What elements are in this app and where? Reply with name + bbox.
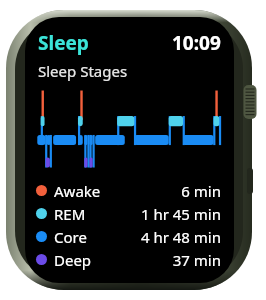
staticText: REM [54,204,86,224]
other: Digital Crown [0,0,266,300]
staticText: 1 hr 45 min [140,204,221,224]
button[interactable]: Deep [25,248,234,271]
staticText: 6 min [181,181,221,201]
button[interactable]: Sleep stages chart [35,87,226,175]
staticText: 4 hr 48 min [140,227,221,247]
staticText: Awake [54,181,101,201]
button[interactable]: Sleep [38,30,221,56]
staticText: Sleep Stages [38,61,128,81]
button[interactable]: Awake [25,179,234,202]
staticText: 37 min [172,250,221,270]
staticText: Deep [54,250,92,270]
staticText: Core [54,227,87,247]
button[interactable]: Core [25,225,234,248]
button[interactable]: REM [25,202,234,225]
staticText: 10:09 [172,30,221,56]
staticText: Sleep [38,30,89,56]
